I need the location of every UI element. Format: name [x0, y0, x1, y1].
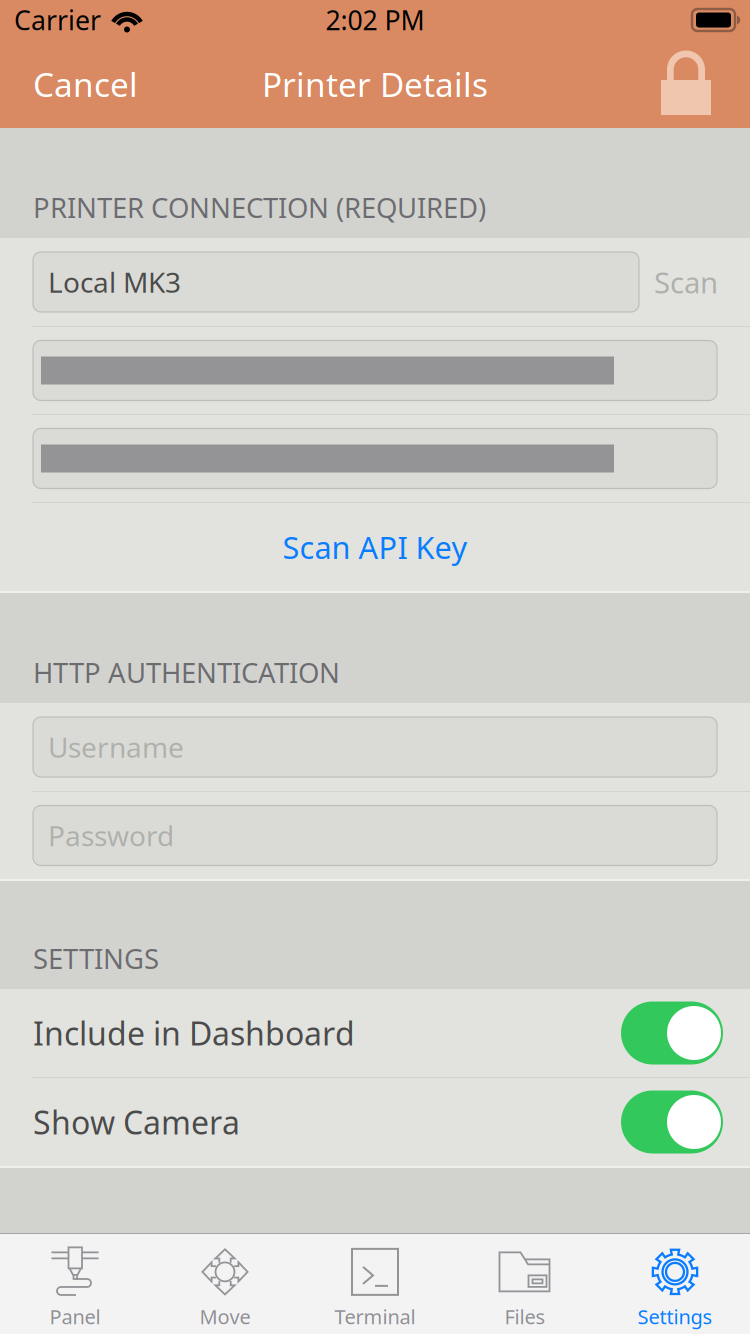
button[interactable]: Cancel [0, 40, 160, 128]
button[interactable]: Show Camera [0, 1078, 750, 1166]
staticText: Show Camera [33, 1100, 240, 1144]
button[interactable]: Settings [600, 1233, 750, 1334]
staticText: Cancel [33, 61, 138, 107]
button[interactable]: Files [450, 1233, 600, 1334]
button[interactable]: Include in Dashboard [0, 989, 750, 1077]
staticText: Printer Details [262, 61, 488, 107]
button[interactable]: Terminal [300, 1233, 450, 1334]
staticText: Include in Dashboard [33, 1011, 355, 1055]
staticText: Files [504, 1303, 545, 1330]
staticText: HTTP AUTHENTICATION [33, 654, 340, 691]
staticText: Local MK3 [48, 263, 181, 301]
staticText: Username [48, 728, 184, 766]
staticText: Carrier [14, 2, 101, 38]
button[interactable]: Scan API Key [0, 503, 750, 591]
staticText: Scan [654, 262, 718, 302]
button[interactable]: Scan [639, 238, 750, 326]
staticText: Move [199, 1303, 250, 1330]
staticText: Scan API Key [282, 526, 467, 568]
button[interactable]: Panel [0, 1233, 150, 1334]
button[interactable]: Locked [639, 40, 750, 128]
staticText: Panel [49, 1303, 100, 1330]
staticText: Settings [637, 1303, 712, 1330]
staticText: 2:02 PM [325, 2, 424, 38]
staticText: Password [48, 816, 174, 854]
button[interactable]: Move [150, 1233, 300, 1334]
staticText: PRINTER CONNECTION (REQUIRED) [33, 189, 486, 226]
staticText: SETTINGS [33, 940, 159, 977]
staticText: Terminal [334, 1303, 415, 1330]
